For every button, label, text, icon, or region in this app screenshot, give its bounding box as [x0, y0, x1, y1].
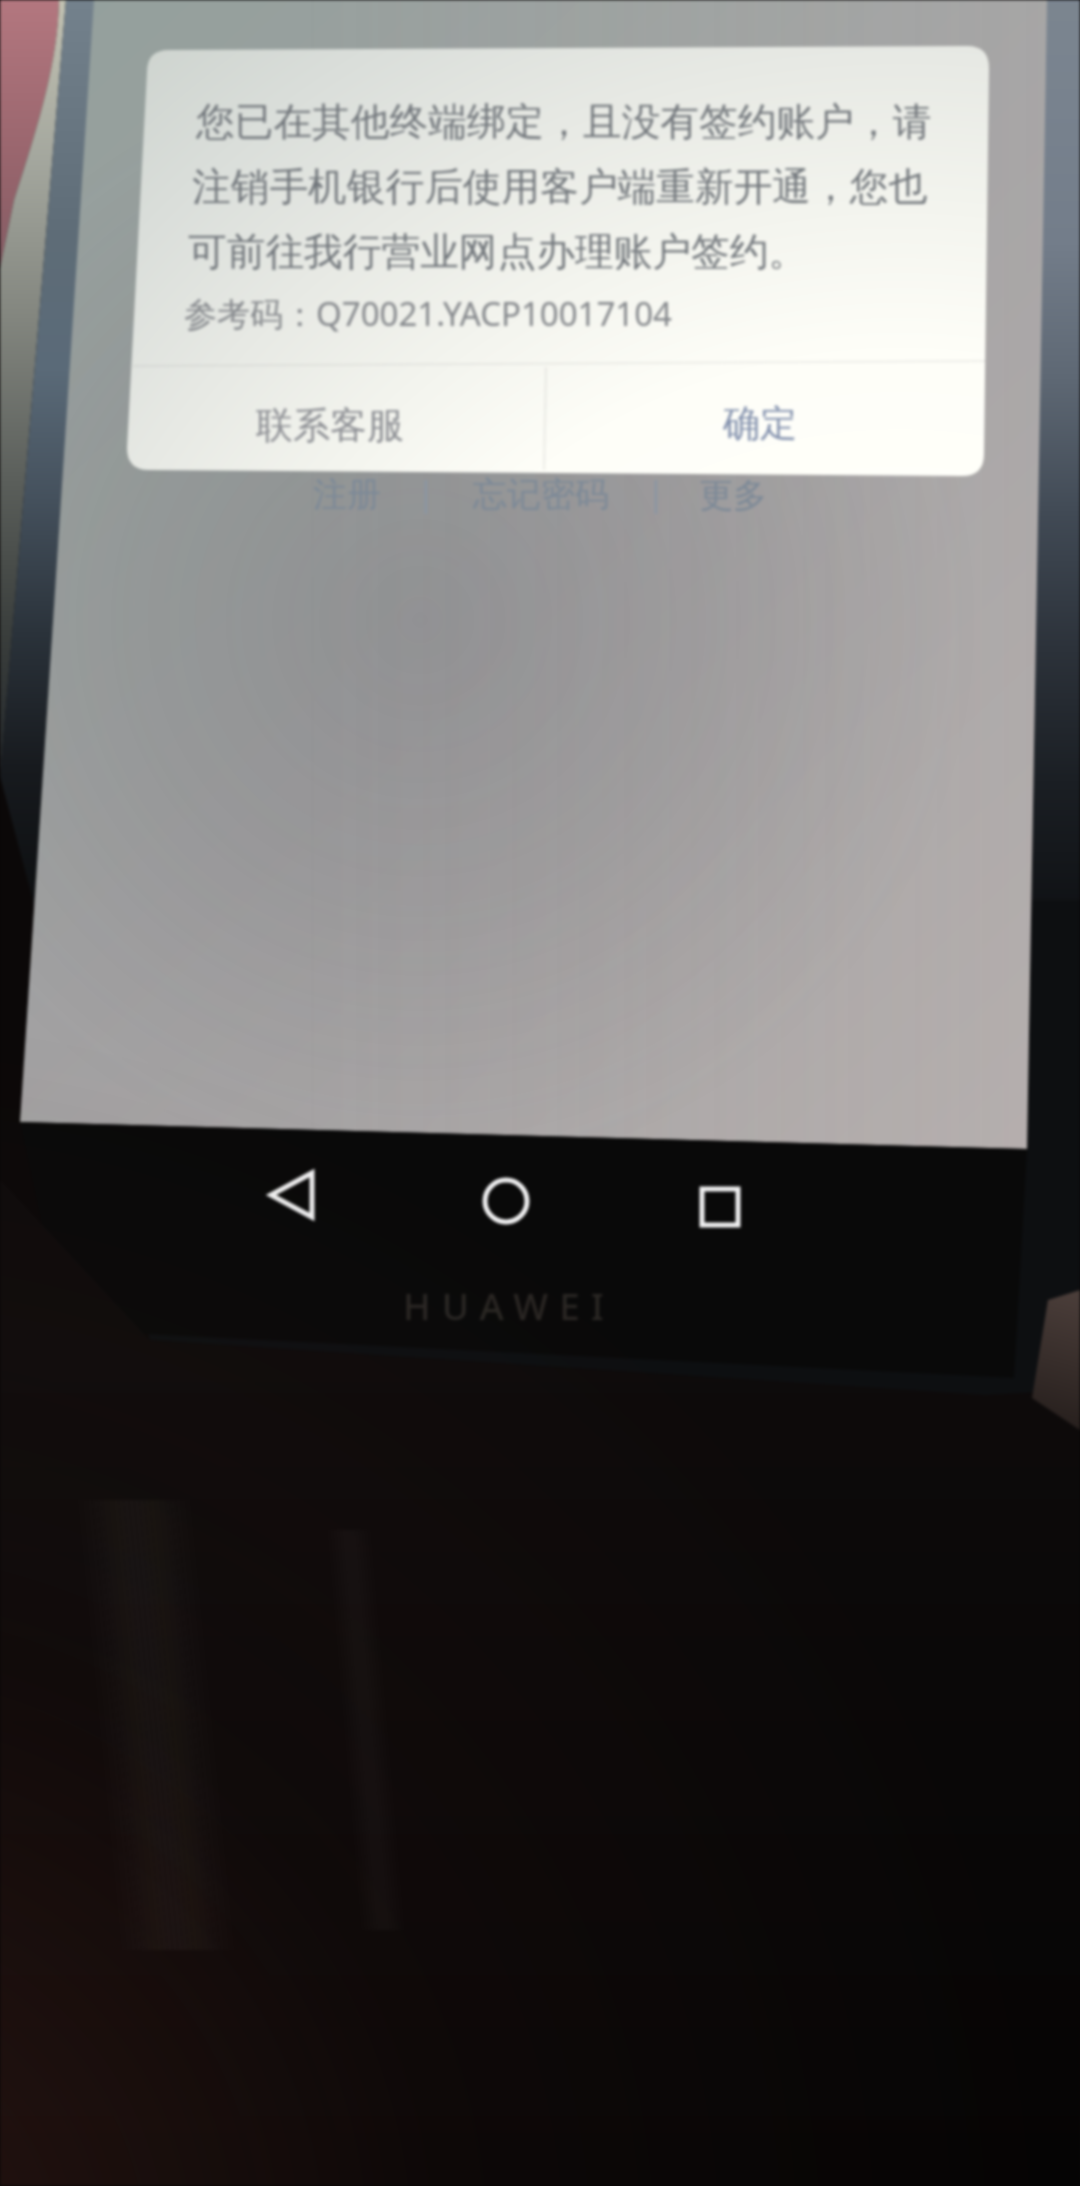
button[interactable]: 更多 — [690, 472, 786, 520]
button[interactable]: 忘记密码 — [455, 472, 630, 520]
button[interactable]: Home — [442, 1152, 572, 1262]
button[interactable]: 注册 — [300, 472, 396, 520]
button[interactable]: 确定 — [545, 367, 985, 470]
button[interactable]: 联系客服 — [133, 367, 545, 470]
button[interactable]: Back — [232, 1150, 362, 1260]
button[interactable]: Recent apps — [652, 1155, 782, 1265]
